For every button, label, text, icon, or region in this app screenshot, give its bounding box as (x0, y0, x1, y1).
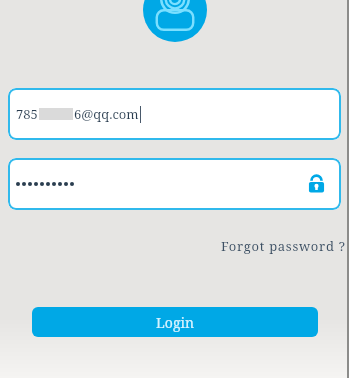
staticText: 785 (16, 105, 38, 123)
other: App logo (143, 0, 207, 42)
staticText: Login (156, 313, 194, 332)
button[interactable]: Toggle password visibility (8, 158, 341, 210)
button[interactable]: Forgot password ? (218, 235, 349, 257)
staticText: Forgot password ? (221, 237, 346, 255)
button[interactable]: 785 (8, 88, 341, 140)
staticText: 6@qq.com (74, 105, 139, 123)
button[interactable]: Toggle password visibility (306, 174, 327, 195)
button[interactable]: Login (32, 307, 318, 337)
